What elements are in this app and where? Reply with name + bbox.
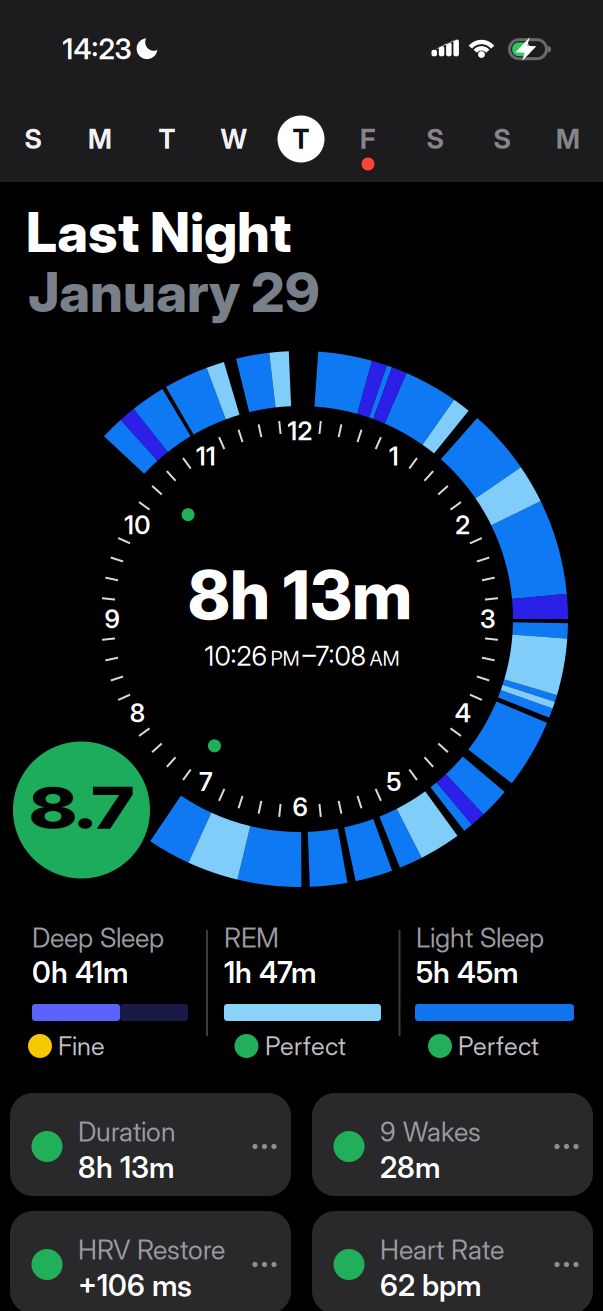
- staticText: AM: [369, 647, 399, 670]
- staticText: S: [493, 123, 510, 155]
- staticText: M: [556, 123, 580, 155]
- staticText: Deep Sleep: [32, 922, 164, 953]
- staticText: PM: [270, 647, 299, 670]
- staticText: 1h 47m: [224, 955, 316, 990]
- staticText: 10:26: [204, 640, 267, 672]
- staticText: REM: [224, 922, 279, 953]
- staticText: 8h 13m: [188, 555, 412, 635]
- staticText: 2: [455, 510, 470, 540]
- staticText: 14:23: [62, 32, 131, 65]
- staticText: T: [158, 123, 175, 155]
- staticText: 7: [199, 767, 213, 797]
- staticText: 12: [287, 416, 312, 446]
- staticText: January 29: [28, 259, 319, 325]
- staticText: 8: [130, 698, 145, 728]
- staticText: 10: [124, 510, 150, 540]
- staticText: S: [24, 123, 41, 155]
- staticText: HRV Restore: [78, 1234, 225, 1265]
- staticText: 28m: [380, 1150, 440, 1185]
- staticText: 9 Wakes: [380, 1116, 481, 1147]
- staticText: –7:08: [302, 640, 366, 672]
- staticText: S: [426, 123, 443, 155]
- staticText: Last Night: [26, 199, 291, 265]
- staticText: M: [88, 123, 112, 155]
- staticText: 62 bpm: [380, 1268, 481, 1303]
- staticText: 6: [292, 792, 307, 822]
- staticText: 5: [386, 767, 401, 797]
- staticText: 4: [455, 698, 471, 728]
- staticText: 1: [389, 441, 399, 471]
- staticText: 0h 41m: [32, 955, 128, 990]
- staticText: W: [220, 123, 247, 155]
- staticText: Perfect: [458, 1031, 539, 1061]
- staticText: 9: [104, 604, 119, 634]
- staticText: 3: [480, 604, 496, 634]
- staticText: Light Sleep: [416, 922, 544, 953]
- staticText: Duration: [78, 1116, 176, 1147]
- staticText: +106 ms: [78, 1268, 192, 1303]
- staticText: 8.7: [42, 773, 121, 843]
- staticText: 5h 45m: [416, 955, 518, 990]
- staticText: 11: [196, 441, 216, 471]
- staticText: F: [360, 123, 376, 155]
- staticText: Fine: [58, 1031, 105, 1061]
- staticText: 8h 13m: [78, 1150, 174, 1185]
- staticText: T: [292, 123, 309, 155]
- staticText: Perfect: [265, 1031, 346, 1061]
- staticText: Heart Rate: [380, 1234, 504, 1265]
